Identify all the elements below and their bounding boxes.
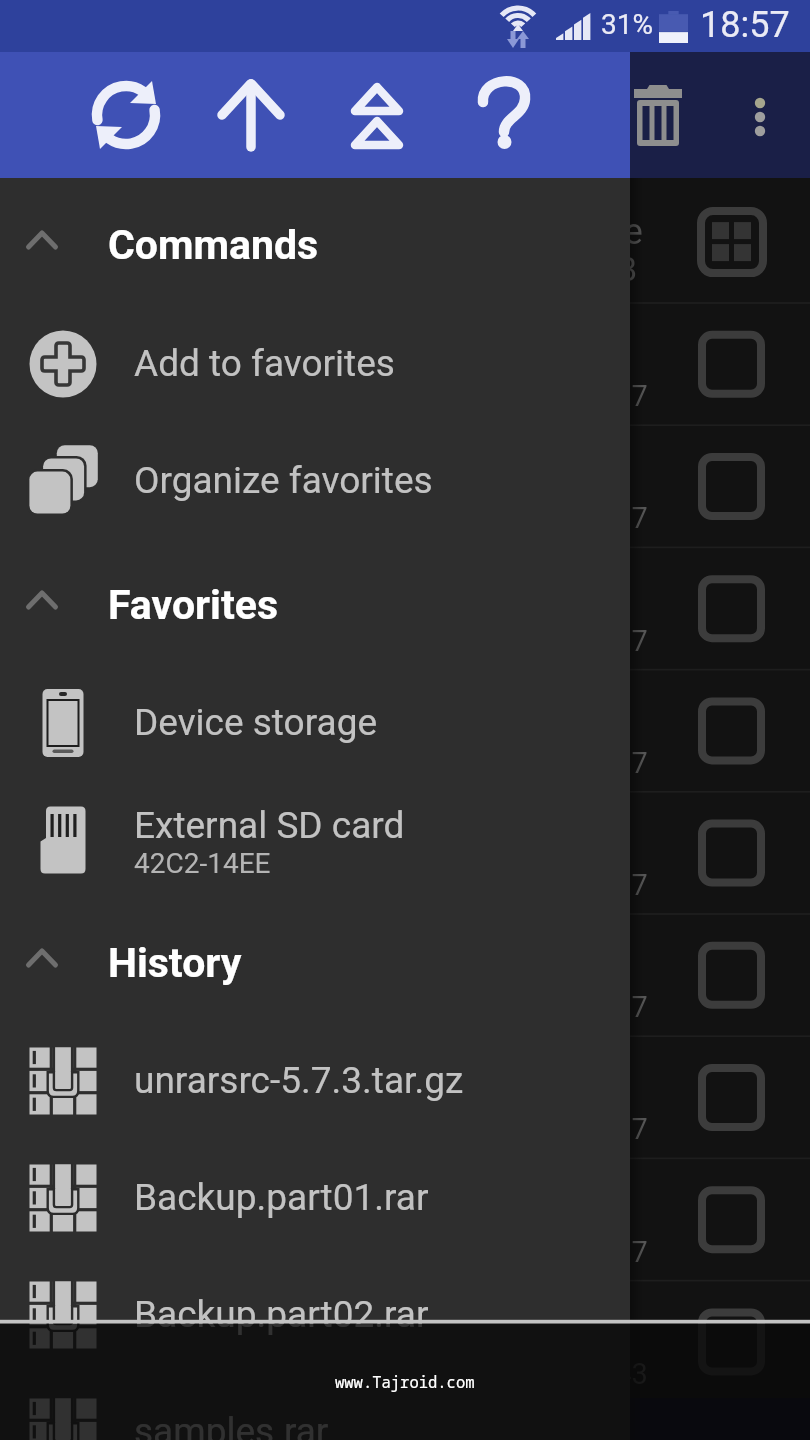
button[interactable]: Add to favorites — [0, 306, 630, 422]
staticText: 2019-11-11 09:87 — [422, 1112, 648, 1146]
staticText: unrarsrc-5.7.3.tar.gz — [134, 1059, 464, 1102]
button[interactable]: Device storage — [0, 665, 630, 781]
staticText: 2019-11-11 09:87 — [422, 1235, 648, 1269]
staticText: Commands — [108, 221, 319, 269]
staticText: Organize favorites — [134, 459, 433, 502]
staticText: 2019-11-11 09:87 — [422, 379, 648, 413]
staticText: Internal storage — [392, 211, 643, 253]
button[interactable]: Organize favorites — [0, 423, 630, 539]
staticText: Add to favorites — [134, 342, 395, 385]
button[interactable]: External SD card — [0, 782, 630, 898]
staticText: 2019-11-11 09:43 — [422, 1357, 648, 1391]
staticText: 31% — [601, 8, 653, 41]
staticText: 42C2-14EE — [134, 847, 271, 880]
button[interactable]: Help — [458, 70, 548, 160]
button[interactable]: Favorites — [0, 560, 630, 648]
staticText: 18:57 — [700, 4, 790, 46]
button[interactable]: Backup.part02.rar — [0, 1257, 630, 1373]
staticText: History — [108, 939, 242, 987]
button[interactable]: Navigate up — [206, 70, 296, 160]
staticText: Backup.part02.rar — [134, 1293, 429, 1336]
staticText: 2019-11-11 09:87 — [422, 746, 648, 780]
staticText: External SD card — [134, 804, 405, 847]
button[interactable]: samples.rar — [0, 1374, 630, 1440]
staticText: samples.rar — [134, 1410, 329, 1440]
staticText: www.Tajroid.com — [335, 1371, 475, 1392]
staticText: 23.21 GB — [503, 250, 638, 289]
button[interactable]: unrarsrc-5.7.3.tar.gz — [0, 1023, 630, 1139]
button[interactable]: History — [0, 918, 630, 1006]
staticText: Device storage — [134, 701, 378, 744]
staticText: 2019-11-11 09:87 — [422, 624, 648, 658]
staticText: Backup.part01.rar — [134, 1176, 429, 1219]
button[interactable]: Refresh — [81, 70, 171, 160]
button[interactable]: Backup.part01.rar — [0, 1140, 630, 1256]
staticText: 2019-11-11 09:87 — [422, 990, 648, 1024]
button[interactable]: Commands — [0, 200, 630, 288]
staticText: Favorites — [108, 581, 279, 629]
staticText: 2019-11-11 09:87 — [422, 868, 648, 902]
button[interactable]: Go to root folder — [332, 70, 422, 160]
staticText: 2019-11-11 09:87 — [422, 501, 648, 535]
